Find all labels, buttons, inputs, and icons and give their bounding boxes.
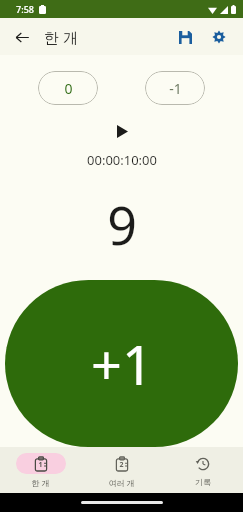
staticText: 9 — [107, 189, 137, 260]
staticText: +1 — [91, 327, 153, 401]
staticText: 한 개 — [31, 477, 50, 488]
button[interactable]: Save — [169, 21, 201, 53]
button[interactable]: Play — [109, 118, 135, 144]
button[interactable]: -1 — [145, 71, 205, 105]
button[interactable]: 기록 — [162, 447, 243, 493]
staticText: -1 — [169, 79, 182, 98]
button[interactable]: +1 — [5, 280, 238, 447]
staticText: 기록 — [195, 477, 211, 487]
button[interactable]: Settings — [203, 21, 235, 53]
staticText: 00:00:10:00 — [87, 151, 157, 169]
staticText: 한 개 — [44, 27, 78, 47]
staticText: 여러 개 — [108, 477, 135, 488]
staticText: 0 — [64, 79, 73, 98]
button[interactable]: 1 — [0, 447, 81, 493]
staticText: 7:58 — [16, 3, 34, 15]
button[interactable]: 2 — [81, 447, 162, 493]
button[interactable]: 0 — [38, 71, 98, 105]
staticText: 2 — [119, 460, 124, 470]
staticText: 1 — [38, 460, 43, 470]
button[interactable]: Back — [6, 21, 38, 53]
